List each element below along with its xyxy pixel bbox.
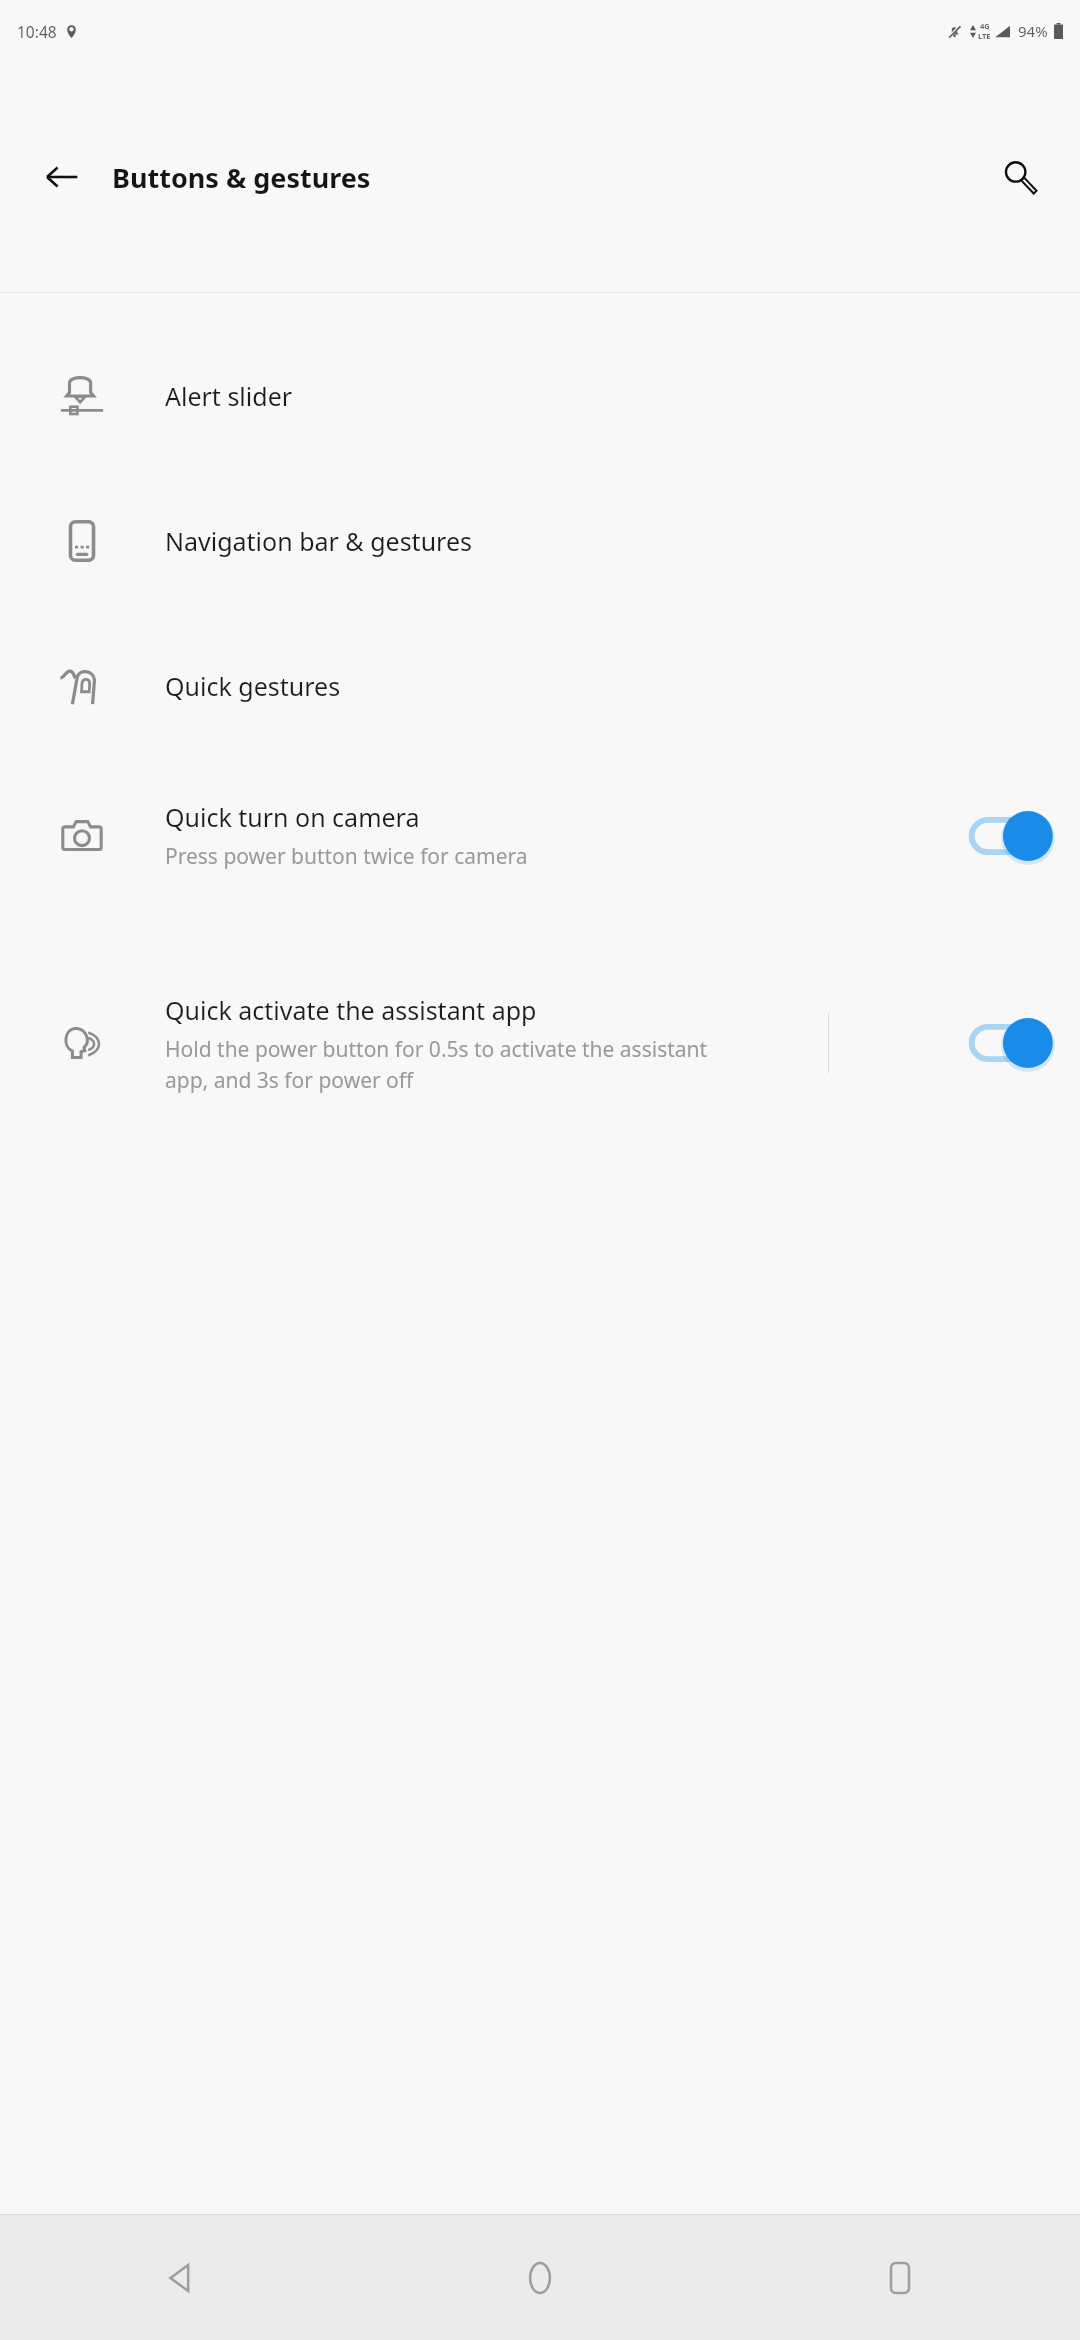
button[interactable]: Recent apps [720,2215,1080,2340]
staticText: 94% [1018,21,1048,41]
button[interactable]: Quick gestures [0,613,1080,758]
button[interactable]: Home [360,2215,720,2340]
staticText: Alert slider [165,379,293,413]
staticText: 4G [980,21,990,31]
staticText: Quick gestures [165,669,341,703]
staticText: Hold the power button for 0.5s to activa… [165,1035,725,1094]
button[interactable]: Alert slider [0,323,1080,468]
staticText: Quick activate the assistant app [165,993,537,1027]
staticText: LTE [978,31,991,41]
button[interactable] [0,758,1080,913]
button[interactable]: Toggle Quick activate the assistant app [958,998,1068,1088]
button[interactable]: Navigation bar & gestures [0,468,1080,613]
staticText: Navigation bar & gestures [165,524,472,558]
staticText: 10:48 [17,21,57,42]
staticText: Buttons & gestures [112,159,371,196]
button[interactable] [0,913,1080,1173]
button[interactable]: Search [980,137,1060,217]
button[interactable]: Back [22,137,102,217]
button[interactable]: Toggle Quick turn on camera [958,791,1068,881]
button[interactable]: Back [0,2215,360,2340]
staticText: Press power button twice for camera [165,842,528,871]
staticText: Quick turn on camera [165,800,420,834]
